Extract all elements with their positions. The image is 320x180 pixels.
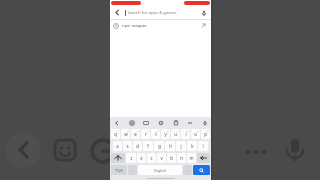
staticText: 3: [137, 129, 139, 132]
button[interactable]: Backspace: [197, 153, 210, 163]
staticText: x: [140, 155, 143, 161]
button[interactable]: m: [187, 153, 196, 163]
button[interactable]: o: [191, 129, 200, 139]
staticText: w: [124, 131, 128, 137]
staticText: q: [114, 131, 117, 137]
button[interactable]: z: [126, 153, 136, 163]
button[interactable]: u: [171, 129, 180, 139]
button[interactable]: Search for apps & games: [125, 6, 198, 19]
staticText: p: [204, 131, 207, 137]
staticText: English: [154, 168, 166, 173]
button[interactable]: i: [181, 129, 190, 139]
staticText: c: [150, 155, 153, 161]
button[interactable]: d: [133, 141, 142, 151]
button[interactable]: Clipboard: [171, 118, 180, 127]
button[interactable]: Voice input: [200, 118, 209, 127]
staticText: n: [180, 155, 183, 161]
staticText: .: [187, 167, 189, 173]
button[interactable]: Stickers: [127, 118, 136, 127]
button[interactable]: k: [187, 141, 197, 151]
staticText: a: [116, 143, 119, 149]
button[interactable]: Back: [112, 118, 121, 127]
staticText: Search for apps & games: [127, 10, 177, 16]
staticText: v: [160, 155, 163, 161]
staticText: s: [126, 143, 129, 149]
staticText: d: [136, 143, 139, 149]
staticText: 1: [117, 129, 119, 132]
button[interactable]: npci mapper: [110, 20, 211, 31]
staticText: 4: [147, 129, 149, 132]
button[interactable]: Settings: [156, 118, 165, 127]
button[interactable]: Insert suggestion: [199, 21, 208, 30]
staticText: ?123: [115, 168, 123, 173]
button[interactable]: l: [198, 141, 208, 151]
staticText: l: [202, 143, 204, 149]
staticText: u: [174, 131, 177, 137]
button[interactable]: c: [147, 153, 156, 163]
button[interactable]: r: [141, 129, 150, 139]
staticText: g: [158, 143, 161, 149]
button[interactable]: f: [143, 141, 153, 151]
button[interactable]: More options: [185, 118, 194, 127]
staticText: 7: [177, 129, 179, 132]
button[interactable]: s: [123, 141, 132, 151]
button[interactable]: ,: [128, 165, 137, 175]
button[interactable]: Voice search: [198, 7, 209, 18]
staticText: k: [191, 143, 194, 149]
staticText: e: [134, 131, 137, 137]
button[interactable]: n: [177, 153, 186, 163]
staticText: npci mapper: [122, 23, 147, 29]
staticText: f: [147, 143, 149, 149]
staticText: 2: [127, 129, 129, 132]
button[interactable]: j: [176, 141, 186, 151]
staticText: 9: [197, 129, 199, 132]
staticText: t: [155, 131, 157, 137]
button[interactable]: a: [113, 141, 122, 151]
button[interactable]: English: [138, 165, 182, 175]
button[interactable]: Back: [112, 7, 123, 18]
staticText: 5: [157, 129, 159, 132]
staticText: r: [145, 131, 147, 137]
staticText: i: [185, 131, 187, 137]
staticText: m: [189, 155, 194, 161]
button[interactable]: b: [167, 153, 176, 163]
button[interactable]: t: [151, 129, 160, 139]
staticText: 0: [207, 129, 209, 132]
button[interactable]: y: [161, 129, 170, 139]
staticText: y: [164, 131, 167, 137]
button[interactable]: v: [157, 153, 166, 163]
button[interactable]: g: [154, 141, 164, 151]
button[interactable]: e: [131, 129, 140, 139]
staticText: 6: [167, 129, 169, 132]
staticText: h: [169, 143, 172, 149]
button[interactable]: ?123: [111, 165, 127, 175]
staticText: j: [180, 143, 182, 149]
button[interactable]: GIF: [141, 118, 150, 127]
button[interactable]: p: [201, 129, 210, 139]
staticText: b: [170, 155, 173, 161]
staticText: z: [130, 155, 133, 161]
button[interactable]: Shift: [111, 153, 125, 163]
staticText: ,: [132, 167, 134, 173]
staticText: o: [194, 131, 197, 137]
button[interactable]: x: [137, 153, 146, 163]
staticText: 8: [187, 129, 189, 132]
button[interactable]: w: [121, 129, 130, 139]
button[interactable]: Search: [193, 165, 210, 175]
button[interactable]: h: [165, 141, 175, 151]
button[interactable]: q: [111, 129, 120, 139]
